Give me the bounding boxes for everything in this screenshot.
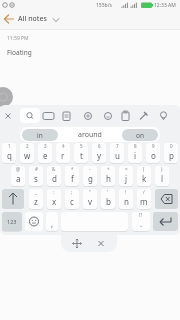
button[interactable]: -: [83, 166, 97, 186]
staticText: s: [34, 173, 38, 184]
staticText: o: [151, 150, 156, 161]
button[interactable]: [153, 212, 178, 231]
button[interactable]: *: [65, 166, 79, 186]
staticText: ,: [51, 218, 54, 229]
staticText: x: [52, 196, 57, 207]
staticText: &: [52, 166, 56, 172]
staticText: (: [143, 166, 145, 172]
button[interactable]: :: [47, 189, 61, 209]
staticText: .: [140, 218, 143, 229]
staticText: w: [24, 150, 31, 161]
button[interactable]: 6: [92, 143, 106, 163]
staticText: j: [125, 173, 128, 184]
staticText: on: [136, 131, 144, 140]
button[interactable]: 2: [20, 143, 34, 163]
staticText: -: [89, 166, 91, 172]
button[interactable]: _: [29, 189, 43, 209]
staticText: g: [88, 173, 93, 184]
staticText: i: [134, 150, 137, 161]
button[interactable]: /: [137, 189, 151, 209]
staticText: l: [161, 173, 164, 184]
button[interactable]: in: [22, 129, 58, 141]
button[interactable]: [155, 189, 178, 209]
staticText: *: [71, 166, 74, 172]
button[interactable]: ': [101, 189, 115, 209]
button[interactable]: ": [83, 189, 97, 209]
button[interactable]: 9: [146, 143, 160, 163]
staticText: n: [124, 196, 129, 207]
staticText: t: [80, 150, 83, 161]
staticText: r: [61, 150, 65, 161]
staticText: f: [71, 173, 74, 184]
button[interactable]: 5: [74, 143, 88, 163]
staticText: =: [125, 166, 128, 172]
staticText: #: [35, 166, 38, 172]
staticText: around: [78, 130, 102, 140]
button[interactable]: [2, 12, 16, 26]
staticText: z: [34, 196, 38, 207]
staticText: /: [143, 189, 145, 195]
button[interactable]: 123: [2, 212, 22, 231]
button[interactable]: 1: [2, 143, 16, 163]
button[interactable]: 3: [38, 143, 52, 163]
button[interactable]: ;: [65, 189, 79, 209]
staticText: 7: [116, 143, 119, 149]
button[interactable]: +: [101, 166, 115, 186]
staticText: 5: [80, 143, 83, 149]
staticText: u: [115, 150, 120, 161]
staticText: k: [142, 173, 147, 184]
staticText: @: [16, 166, 21, 172]
staticText: 11:59 PM: [7, 35, 29, 42]
button[interactable]: 7: [110, 143, 124, 163]
staticText: Floating: [7, 48, 32, 57]
staticText: _: [35, 189, 37, 195]
staticText: a: [16, 173, 21, 184]
staticText: c: [70, 196, 74, 207]
button[interactable]: [20, 108, 40, 123]
button[interactable]: All notes: [18, 12, 62, 26]
staticText: 8: [134, 143, 137, 149]
staticText: in: [37, 131, 43, 140]
button[interactable]: [25, 212, 43, 231]
button[interactable]: around: [58, 127, 122, 142]
button[interactable]: =: [119, 166, 133, 186]
staticText: v: [88, 196, 93, 207]
staticText: 155b/s: [96, 2, 112, 9]
staticText: h: [106, 173, 111, 184]
staticText: q: [7, 150, 12, 161]
staticText: !?: [139, 212, 143, 218]
staticText: d: [52, 173, 57, 184]
button[interactable]: [61, 232, 117, 252]
button[interactable]: @: [11, 166, 25, 186]
button[interactable]: 4: [56, 143, 70, 163]
button[interactable]: 8: [128, 143, 142, 163]
staticText: e: [43, 150, 48, 161]
button[interactable]: ): [155, 166, 169, 186]
button[interactable]: !: [119, 189, 133, 209]
staticText: 6: [98, 143, 101, 149]
staticText: 3: [44, 143, 47, 149]
button[interactable]: [2, 189, 24, 209]
button[interactable]: &: [47, 166, 61, 186]
staticText: p: [169, 150, 174, 161]
staticText: 123: [7, 218, 17, 225]
staticText: y: [97, 150, 102, 161]
staticText: 12:33 AM: [154, 2, 176, 9]
button[interactable]: [0, 87, 13, 107]
staticText: ;: [71, 189, 73, 195]
staticText: ": [89, 189, 91, 195]
staticText: b: [106, 196, 111, 207]
staticText: +: [107, 166, 110, 172]
button[interactable]: 0: [164, 143, 178, 163]
button[interactable]: ,: [46, 212, 58, 231]
staticText: !: [125, 189, 127, 195]
staticText: 4: [62, 143, 65, 149]
staticText: 0: [170, 143, 173, 149]
button[interactable]: on: [122, 129, 158, 141]
button[interactable]: #: [29, 166, 43, 186]
staticText: ): [161, 166, 163, 172]
button[interactable]: (: [137, 166, 151, 186]
button[interactable]: !?: [132, 212, 150, 231]
staticText: All notes: [18, 14, 47, 24]
